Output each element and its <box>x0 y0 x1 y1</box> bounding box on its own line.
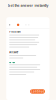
staticText: Continue <box>31 90 44 93</box>
staticText: Get the answer instantly <box>7 3 48 8</box>
staticText: Answer <box>9 51 18 54</box>
button[interactable]: Continue <box>30 89 45 94</box>
staticText: Problem <box>9 30 20 34</box>
